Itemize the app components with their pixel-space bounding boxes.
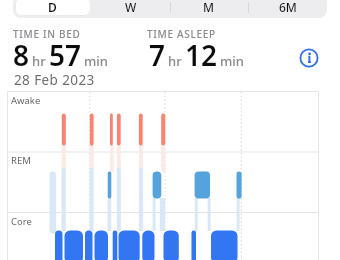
staticText: REM [11, 154, 31, 167]
staticText: M [203, 0, 215, 15]
staticText: 28 Feb 2023 [14, 71, 95, 89]
staticText: 7 [149, 36, 166, 74]
staticText: Awake [11, 94, 41, 107]
staticText: Core [11, 215, 32, 228]
button[interactable] [299, 48, 319, 68]
button[interactable]: D [13, 0, 91, 16]
staticText: 8 [13, 36, 30, 74]
staticText: D [48, 0, 57, 15]
staticText: 12 [185, 36, 218, 74]
staticText: W [125, 0, 137, 15]
staticText: min [220, 52, 244, 70]
staticText: min [84, 52, 108, 70]
staticText: hr [168, 52, 182, 70]
button[interactable]: W [92, 0, 170, 16]
button[interactable]: 6M [249, 0, 327, 16]
staticText: TIME ASLEEP [147, 27, 216, 41]
button[interactable]: M [170, 0, 248, 16]
staticText: TIME IN BED [13, 27, 81, 41]
staticText: 57 [49, 36, 82, 74]
staticText: hr [32, 52, 46, 70]
staticText: 6M [279, 0, 297, 15]
